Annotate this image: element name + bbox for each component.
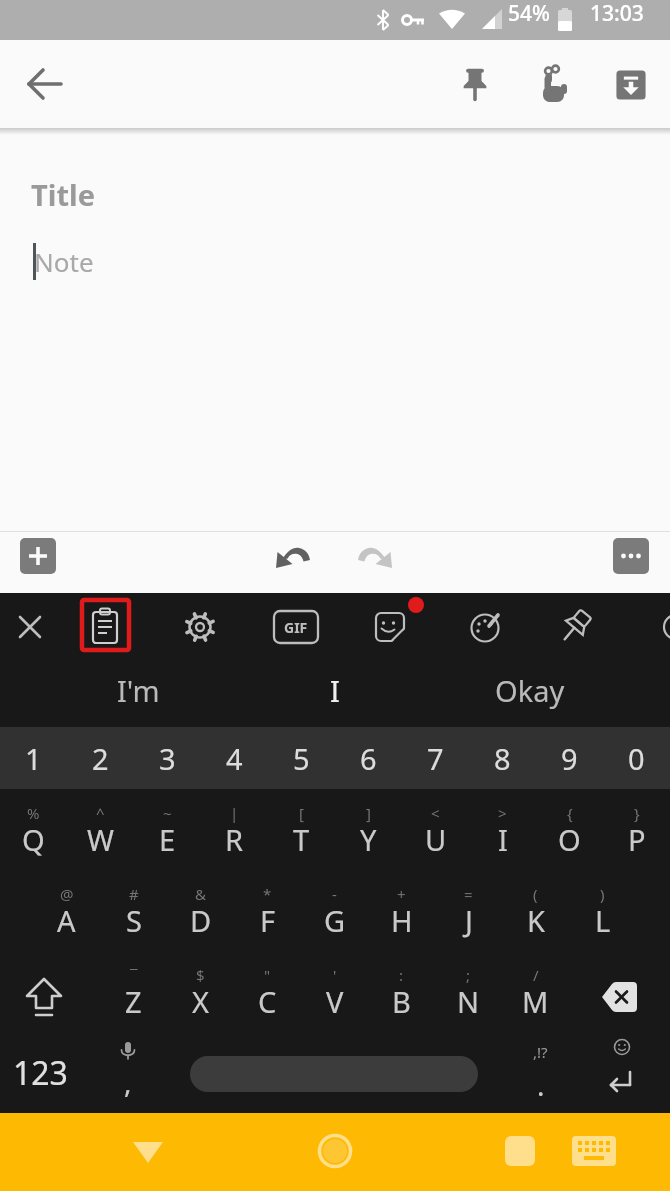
staticText: 2 [92, 739, 109, 778]
button[interactable] [607, 532, 655, 580]
staticText: N [457, 982, 480, 1021]
staticText: ¯ [130, 965, 138, 985]
staticText: Y [360, 820, 377, 859]
staticText: = [464, 884, 473, 904]
button[interactable]: ] [335, 789, 402, 870]
button[interactable]: Note [4, 231, 124, 291]
button[interactable]: = [435, 870, 502, 951]
staticText: F [260, 901, 276, 940]
button[interactable] [525, 57, 581, 113]
button[interactable]: & [167, 870, 234, 951]
button[interactable] [14, 532, 62, 580]
button[interactable]: 1 [0, 727, 67, 789]
staticText: } [634, 803, 640, 823]
staticText: R [225, 820, 244, 859]
button[interactable]: 5 [268, 727, 335, 789]
button[interactable]: % [0, 789, 67, 870]
staticText: Okay [495, 671, 565, 710]
button[interactable]: ¯ [100, 951, 167, 1032]
staticText: ] [366, 803, 371, 823]
staticText: [ [299, 803, 304, 823]
staticText: * [263, 884, 272, 904]
button[interactable]: 3 [134, 727, 201, 789]
button[interactable]: , [108, 1062, 148, 1102]
button[interactable]: / [502, 951, 569, 1032]
button[interactable]: 9 [536, 727, 603, 789]
button[interactable]: * [234, 870, 301, 951]
staticText: Z [125, 982, 142, 1021]
button[interactable]: - [301, 870, 368, 951]
button[interactable]: I'm [78, 660, 198, 720]
button[interactable] [120, 1124, 176, 1180]
staticText: V [326, 982, 344, 1021]
button[interactable]: : [368, 951, 435, 1032]
button[interactable] [566, 1123, 622, 1179]
staticText: K [527, 901, 545, 940]
button[interactable]: < [402, 789, 469, 870]
staticText: ; [466, 965, 471, 985]
staticText: { [567, 803, 573, 823]
staticText: I'm [117, 671, 160, 710]
staticText: 8 [494, 739, 511, 778]
button[interactable]: Title [0, 164, 126, 224]
staticText: G [324, 901, 346, 940]
staticText: 7 [427, 739, 444, 778]
button[interactable]: 6 [335, 727, 402, 789]
staticText: Title [31, 175, 95, 214]
staticText: 9 [561, 739, 578, 778]
staticText: : [399, 965, 404, 985]
button[interactable]: > [469, 789, 536, 870]
button[interactable]: 123 [0, 1043, 100, 1103]
button[interactable] [307, 1123, 363, 1179]
button[interactable]: # [100, 870, 167, 951]
staticText: @ [60, 884, 74, 904]
button[interactable]: Okay [470, 660, 590, 720]
button[interactable]: " [234, 951, 301, 1032]
staticText: 1 [25, 739, 42, 778]
staticText: % [27, 803, 40, 823]
staticText: Note [34, 244, 94, 279]
button[interactable]: $ [167, 951, 234, 1032]
staticText: ' [333, 965, 337, 985]
button[interactable]: ^ [67, 789, 134, 870]
button[interactable]: @ [33, 870, 100, 951]
button[interactable]: I [275, 660, 395, 720]
staticText: A [57, 901, 76, 940]
button[interactable]: 7 [402, 727, 469, 789]
button[interactable]: { [536, 789, 603, 870]
staticText: 13:03 [590, 0, 644, 28]
staticText: I [498, 820, 508, 859]
staticText: 6 [360, 739, 377, 778]
button[interactable]: 8 [469, 727, 536, 789]
button[interactable] [18, 57, 72, 111]
button[interactable] [349, 532, 397, 580]
staticText: 4 [226, 739, 243, 778]
button[interactable]: ; [435, 951, 502, 1032]
button[interactable] [190, 1056, 478, 1092]
staticText: ^ [96, 803, 105, 823]
button[interactable]: ( [502, 870, 569, 951]
staticText: ,!? [533, 1042, 548, 1062]
button[interactable]: ~ [134, 789, 201, 870]
button[interactable]: ' [301, 951, 368, 1032]
staticText: M [522, 982, 549, 1021]
staticText: . [537, 1066, 545, 1104]
staticText: U [425, 820, 447, 859]
staticText: E [159, 820, 176, 859]
button[interactable]: 4 [201, 727, 268, 789]
button[interactable]: + [368, 870, 435, 951]
button[interactable]: . [521, 1065, 561, 1105]
button[interactable] [271, 532, 319, 580]
staticText: > [498, 803, 507, 823]
button[interactable]: ) [569, 870, 636, 951]
button[interactable] [603, 57, 659, 113]
staticText: B [392, 982, 411, 1021]
button[interactable]: 0 [603, 727, 670, 789]
button[interactable]: | [201, 789, 268, 870]
staticText: GIF [284, 618, 308, 637]
button[interactable]: } [603, 789, 670, 870]
button[interactable]: 2 [67, 727, 134, 789]
button[interactable] [447, 57, 503, 113]
button[interactable]: [ [268, 789, 335, 870]
button[interactable] [492, 1123, 548, 1179]
